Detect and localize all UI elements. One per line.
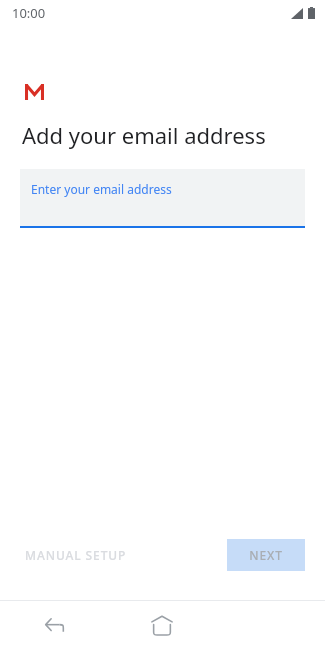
button[interactable]: Back xyxy=(0,601,108,650)
button[interactable]: MANUAL SETUP xyxy=(20,539,132,571)
button[interactable]: Home xyxy=(108,601,216,650)
staticText: NEXT xyxy=(249,547,283,563)
staticText: Add your email address xyxy=(22,120,266,150)
button[interactable]: Enter your email address xyxy=(20,169,305,228)
staticText: Enter your email address xyxy=(31,181,172,197)
staticText: 10:00 xyxy=(12,4,46,22)
button[interactable]: NEXT xyxy=(227,539,305,571)
staticText: MANUAL SETUP xyxy=(25,547,127,563)
